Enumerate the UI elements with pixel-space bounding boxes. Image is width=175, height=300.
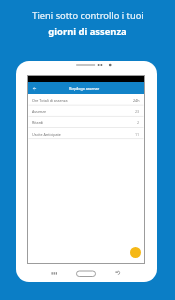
button[interactable]: Home (75, 268, 97, 279)
button[interactable]: Ritardi (32, 118, 140, 127)
staticText: Riepilogo assenze (69, 86, 100, 91)
button[interactable]: Add (130, 247, 141, 258)
staticText: 24h (133, 98, 140, 103)
staticText: Ritardi (32, 120, 44, 125)
staticText: giorni di assenza (48, 25, 127, 38)
staticText: 23 (135, 109, 140, 114)
button[interactable]: Assenze (32, 107, 140, 116)
button[interactable]: Back (114, 269, 123, 277)
staticText: 11 (135, 132, 140, 137)
staticText: 2 (137, 120, 140, 125)
button[interactable]: Ore Totali di assenza (32, 96, 140, 105)
button[interactable]: Recent apps (50, 269, 59, 277)
staticText: Ore Totali di assenza (32, 98, 68, 103)
button[interactable]: Uscite Anticipate (32, 130, 140, 139)
staticText: Assenze (32, 109, 47, 114)
staticText: Uscite Anticipate (32, 132, 61, 137)
button[interactable]: Back (27, 82, 145, 94)
staticText: Tieni sotto controllo i tuoi (32, 9, 144, 22)
button[interactable]: Back (32, 86, 37, 91)
